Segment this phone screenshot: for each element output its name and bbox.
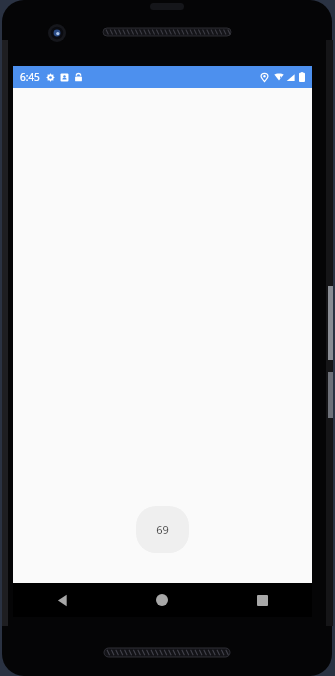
button[interactable]: Home: [112, 583, 212, 617]
button[interactable]: 69: [136, 506, 189, 553]
button[interactable]: Back: [13, 583, 112, 617]
staticText: 6:45: [20, 70, 40, 84]
staticText: 69: [156, 522, 169, 537]
button[interactable]: Recent apps: [212, 583, 312, 617]
